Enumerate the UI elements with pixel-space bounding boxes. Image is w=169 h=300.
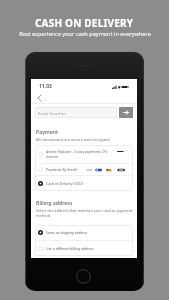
button[interactable]: Kode Voucher [35,107,117,118]
staticText: Atome PayLater - 3 easy payments, 0% int… [46,149,108,159]
staticText: Cash on Delivery (COD) [46,181,83,186]
button[interactable]: Apply voucher [119,107,133,118]
staticText: CASH ON DELIVERY [35,16,134,30]
button[interactable]: Cash on Delivery (COD) [35,176,133,191]
staticText: Payment [36,128,59,135]
staticText: Payments By Kredit [46,167,77,172]
staticText: All transactions are secure and encrypte… [36,137,111,142]
button[interactable]: Payments By Kredit [35,164,133,175]
button[interactable]: Use a different billing address [35,241,133,256]
staticText: Select the address that matches your car… [36,208,133,218]
button[interactable]: Atome PayLater - 3 easy payments, 0% int… [35,145,133,163]
staticText: Use a different billing address [46,246,94,251]
staticText: 11.03 [39,83,52,90]
button[interactable]: Same as shipping address [35,225,133,240]
staticText: Best experience your cash payment in eve… [19,30,151,38]
button[interactable]: Back [34,93,44,103]
staticText: Billing address [36,199,73,206]
staticText: Kode Voucher [38,110,67,116]
staticText: Same as shipping address [46,230,88,235]
